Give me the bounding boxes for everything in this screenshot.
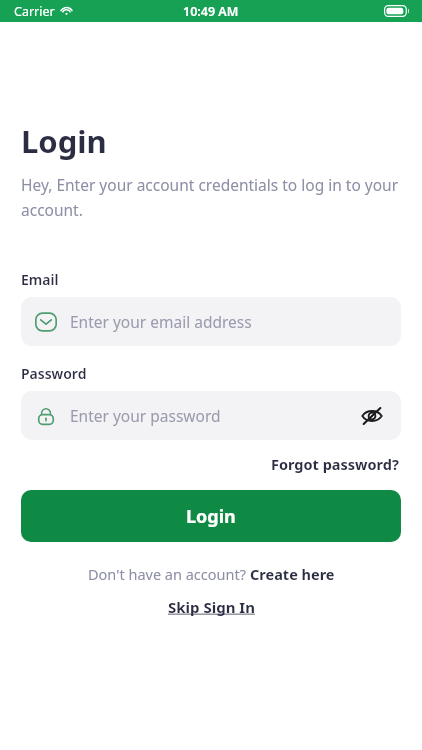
button[interactable]: Skip Sign In bbox=[166, 596, 257, 618]
staticText: Login bbox=[186, 504, 236, 529]
button[interactable]: Create here bbox=[250, 564, 335, 584]
staticText: Login bbox=[21, 120, 107, 162]
staticText: Enter your password bbox=[70, 405, 221, 426]
staticText: Password bbox=[21, 364, 87, 383]
staticText: Enter your email address bbox=[70, 311, 252, 332]
button[interactable]: Login bbox=[21, 490, 401, 542]
button[interactable]: Enter your password bbox=[21, 391, 401, 440]
staticText: Email bbox=[21, 270, 59, 289]
staticText: Carrier bbox=[14, 3, 55, 20]
staticText: Don't have an account? bbox=[88, 564, 250, 584]
staticText: Forgot password? bbox=[271, 454, 399, 474]
button[interactable]: Enter your email address bbox=[21, 297, 401, 346]
staticText: Create here bbox=[250, 564, 335, 584]
button[interactable]: Show password bbox=[357, 401, 387, 431]
staticText: Skip Sign In bbox=[168, 597, 255, 617]
staticText: Hey, Enter your account credentials to l… bbox=[21, 174, 401, 220]
button[interactable]: Forgot password? bbox=[269, 452, 401, 476]
staticText: 10:49 AM bbox=[183, 3, 239, 20]
